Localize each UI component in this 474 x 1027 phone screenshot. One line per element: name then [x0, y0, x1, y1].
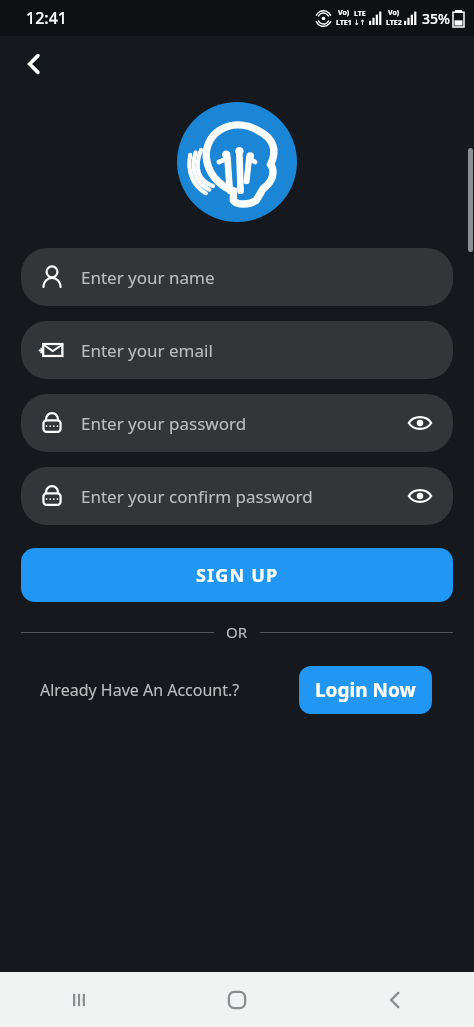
button[interactable]: Recents — [0, 972, 158, 1027]
staticText: Enter your name — [81, 266, 435, 289]
button[interactable]: Enter your confirm password — [21, 467, 453, 525]
button[interactable]: Show password — [405, 481, 435, 511]
button[interactable]: Show password — [405, 408, 435, 438]
staticText: 35% — [422, 9, 450, 28]
staticText: LTE2 — [386, 18, 402, 28]
staticText: SIGN UP — [196, 563, 279, 588]
staticText: Enter your email — [81, 339, 435, 362]
staticText: 12:41 — [26, 7, 67, 29]
staticText: LTE — [354, 9, 366, 19]
button[interactable]: Login Now — [299, 666, 432, 714]
staticText: Already Have An Account.? — [40, 679, 240, 701]
staticText: Enter your password — [81, 412, 405, 435]
button[interactable]: Back — [12, 42, 56, 86]
staticText: Login Now — [315, 677, 416, 703]
button[interactable]: Enter your email — [21, 321, 453, 379]
staticText: Enter your confirm password — [81, 485, 405, 508]
button[interactable]: Home — [158, 972, 316, 1027]
button[interactable]: Back — [316, 972, 474, 1027]
staticText: Vo) — [388, 8, 400, 18]
staticText: ↓↑ — [354, 19, 366, 27]
button[interactable]: Enter your name — [21, 248, 453, 306]
staticText: OR — [226, 622, 248, 642]
staticText: LTE1 — [336, 18, 352, 28]
staticText: Vo) — [338, 8, 350, 18]
button[interactable]: Enter your password — [21, 394, 453, 452]
button[interactable]: SIGN UP — [21, 548, 453, 602]
